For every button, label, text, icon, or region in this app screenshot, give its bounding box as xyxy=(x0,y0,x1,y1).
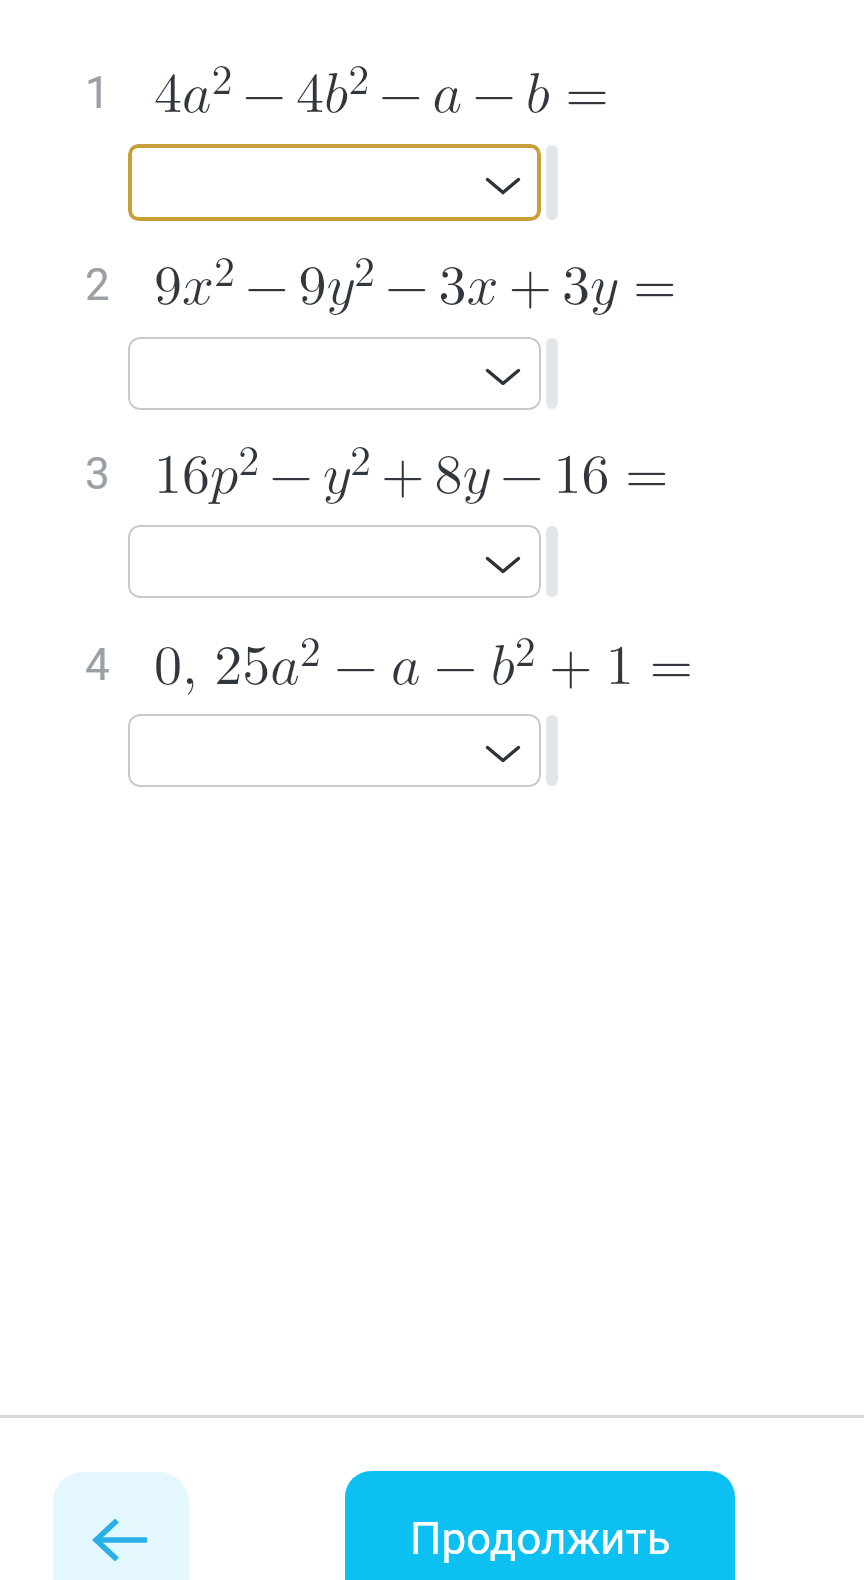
button[interactable] xyxy=(128,714,541,787)
button[interactable] xyxy=(128,144,541,221)
staticText: 1 xyxy=(85,67,110,119)
staticText: 4 xyxy=(85,639,110,691)
staticText: 9𝑥2 − 9𝑦2 − 3𝑥 + 3𝑦 = xyxy=(154,252,677,315)
staticText: 4𝑎2 − 4𝑏2 − 𝑎 − 𝑏 = xyxy=(154,60,609,123)
button[interactable] xyxy=(128,525,541,598)
staticText: 2 xyxy=(85,259,110,311)
staticText: 16𝑝2 − 𝑦2 + 8𝑦 − 16 = xyxy=(154,441,669,504)
staticText: 0, 25𝑎2 − 𝑎 − 𝑏2 + 1 = xyxy=(154,632,693,695)
staticText: 3 xyxy=(85,448,110,500)
staticText: Продолжить xyxy=(410,1513,671,1565)
button[interactable]: Продолжить xyxy=(345,1471,735,1580)
button[interactable] xyxy=(53,1472,189,1580)
button[interactable] xyxy=(128,337,541,410)
